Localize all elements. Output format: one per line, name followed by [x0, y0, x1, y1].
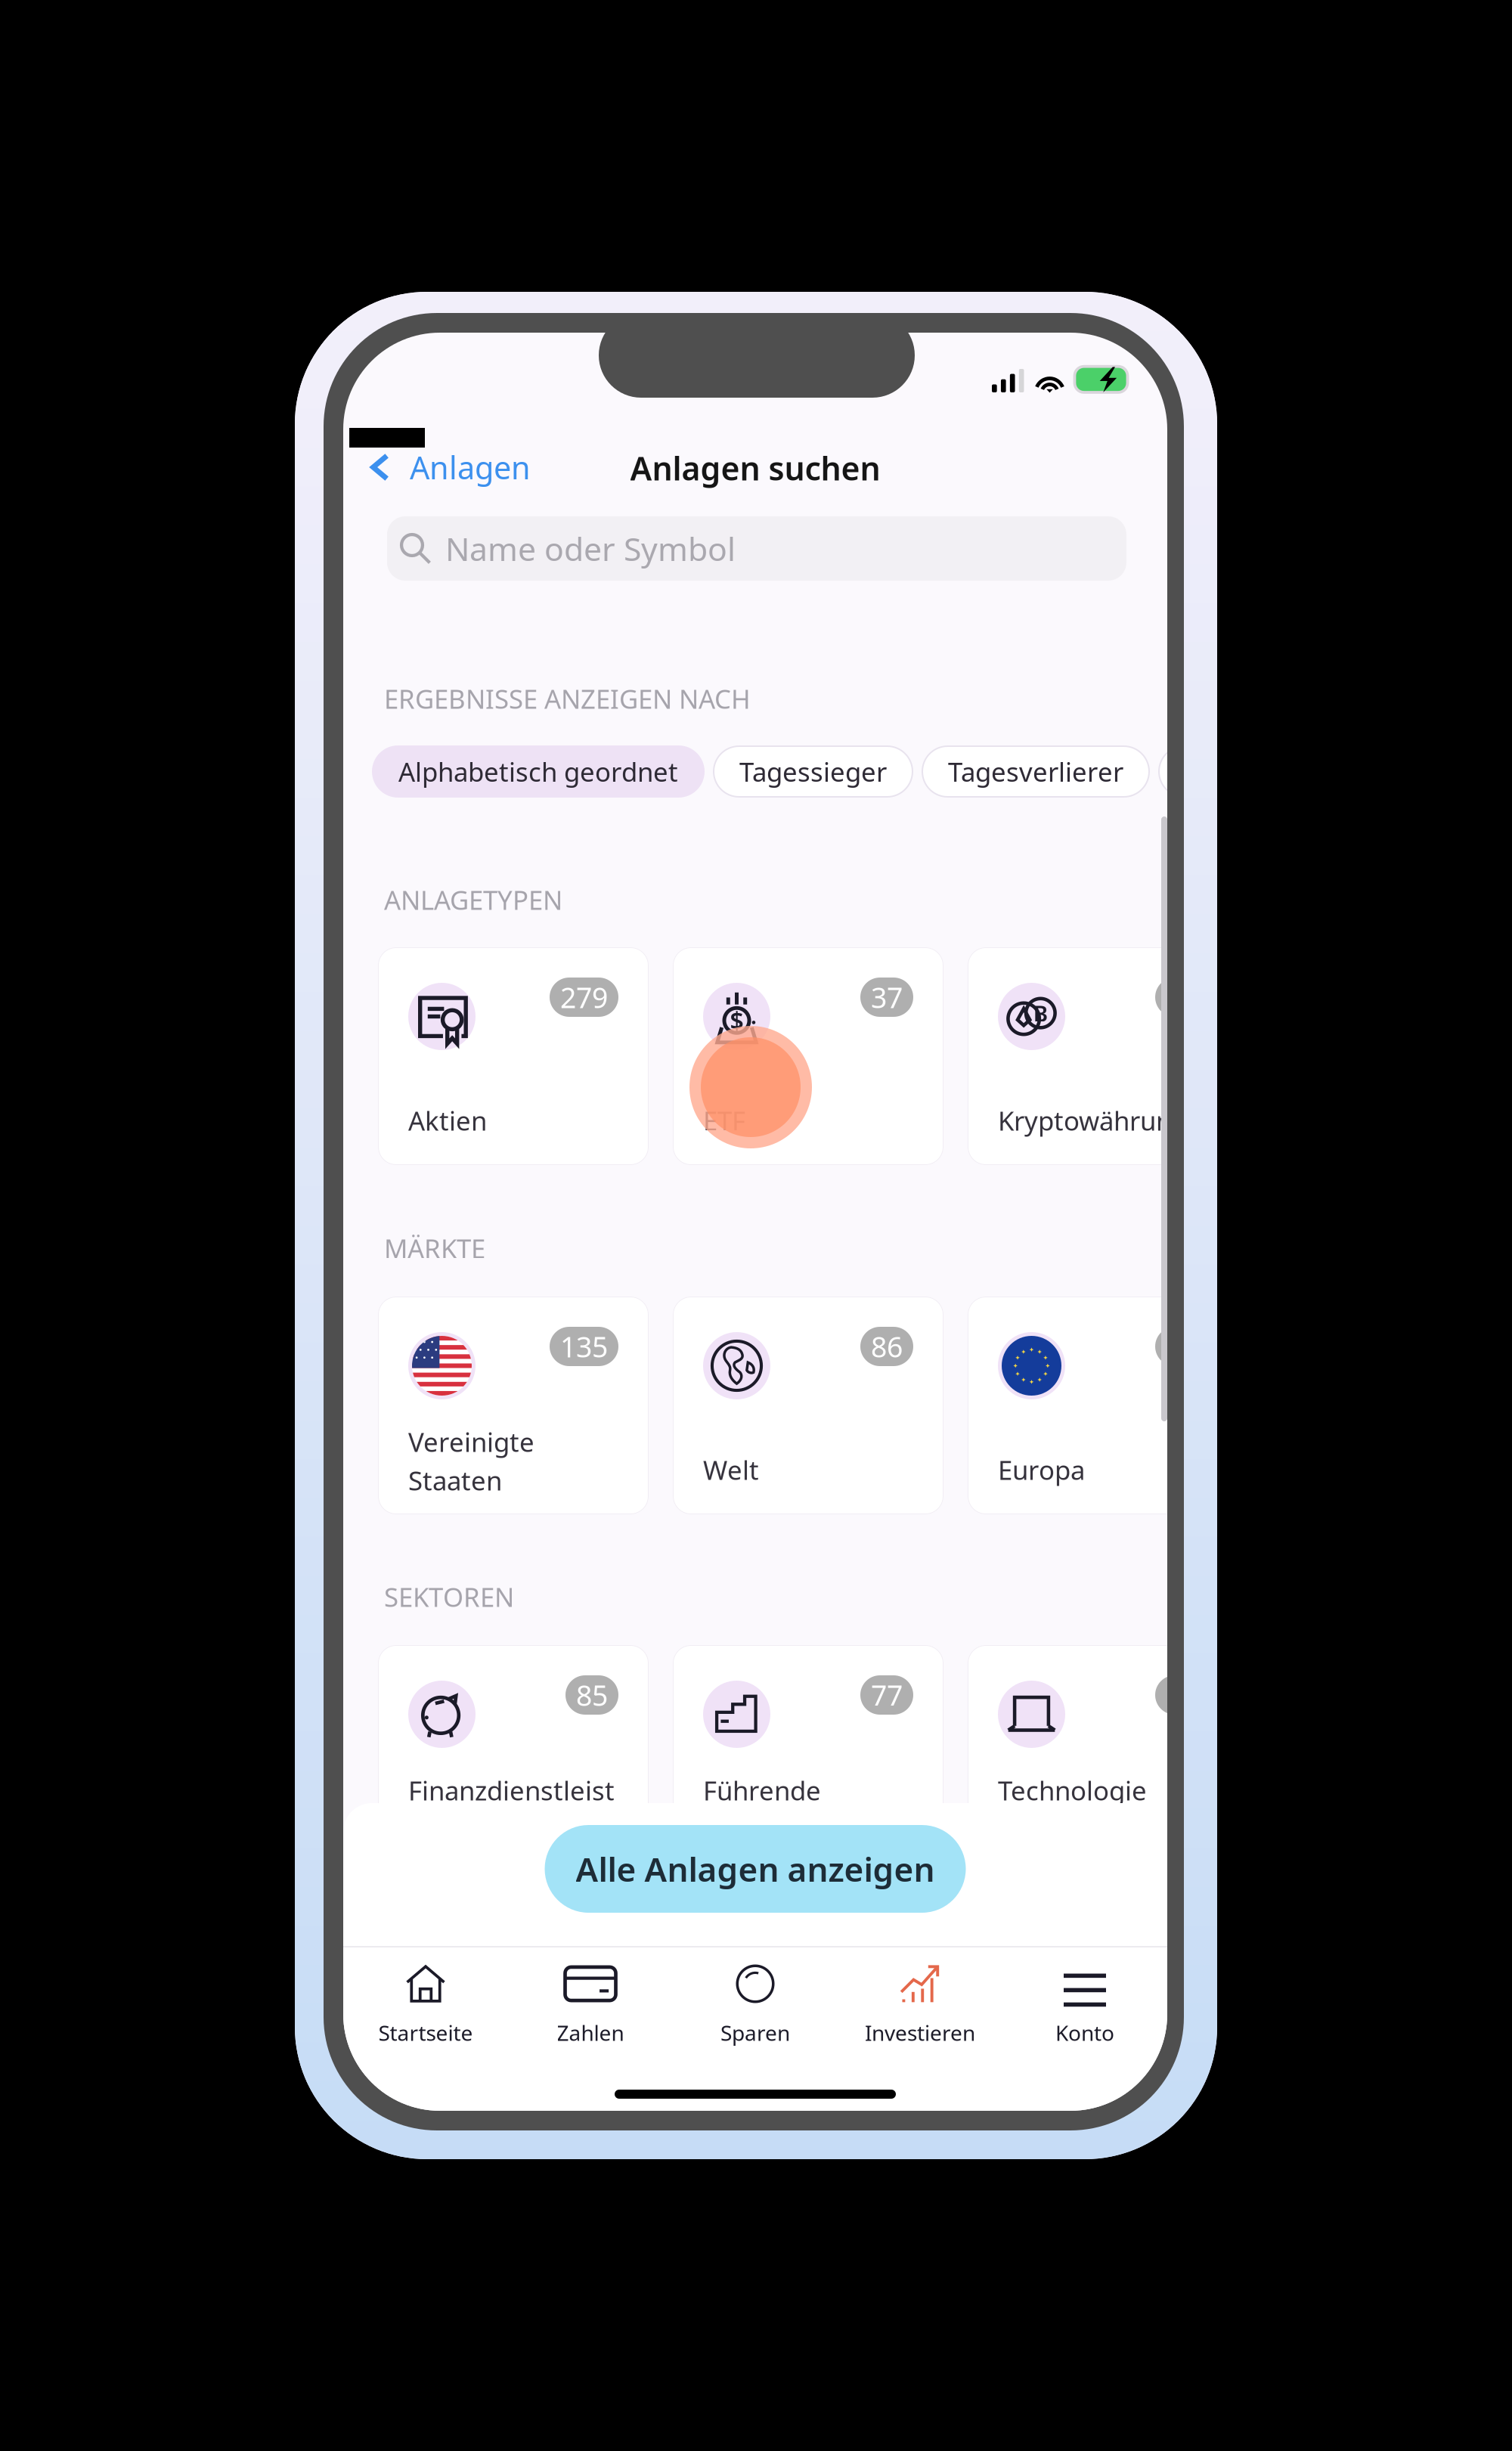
staticText: Anlagen suchen	[630, 447, 880, 489]
staticText: SEKTOREN	[384, 1579, 514, 1614]
button[interactable]: Sparen	[673, 1957, 838, 2062]
button[interactable]: Alle Anlagen anzeigen	[545, 1825, 966, 1913]
staticText: B	[1033, 998, 1048, 1028]
staticText: Kryptowährungen	[998, 1103, 1219, 1138]
staticText: Konto	[1055, 2019, 1114, 2047]
staticText: 85	[576, 1676, 608, 1714]
button[interactable]: 86	[673, 1297, 943, 1514]
staticText: Technologie	[998, 1773, 1147, 1808]
staticText: 37	[871, 978, 903, 1016]
staticText: 279	[560, 978, 608, 1016]
button[interactable]: 50	[968, 1297, 1238, 1514]
staticText: Europa	[998, 1452, 1085, 1487]
button[interactable]: Alphabetisch geordnet	[373, 746, 704, 797]
staticText: Zahlen	[557, 2019, 624, 2047]
staticText: 77	[871, 1676, 903, 1714]
staticText: Startseite	[378, 2019, 473, 2047]
button[interactable]: Investieren	[838, 1957, 1002, 2062]
button[interactable]: Neu	[1159, 746, 1261, 797]
staticText: 86	[871, 1328, 903, 1365]
staticText: ETF	[703, 1103, 745, 1138]
staticText: Tagessieger	[739, 754, 887, 789]
button[interactable]: Anlagen	[343, 441, 544, 494]
button[interactable]: 77	[673, 1645, 943, 1863]
staticText: Staaten	[408, 1463, 502, 1498]
staticText: Anlagen	[410, 447, 531, 488]
button[interactable]: Startseite	[343, 1957, 508, 2062]
staticText: Tagesverlierer	[948, 754, 1123, 789]
staticText: Führende	[703, 1773, 821, 1808]
button[interactable]: 64	[968, 1645, 1238, 1863]
staticText: 135	[560, 1328, 608, 1365]
staticText: Welt	[703, 1452, 759, 1487]
staticText: 50	[1166, 1328, 1198, 1365]
staticText: Alphabetisch geordnet	[398, 754, 678, 789]
staticText: Industrie	[703, 1811, 815, 1846]
button[interactable]: $	[673, 947, 943, 1165]
button[interactable]: Tagesverlierer	[922, 746, 1149, 797]
staticText: MÄRKTE	[384, 1231, 485, 1266]
button[interactable]: 135	[378, 1297, 649, 1514]
staticText: Vereinigte	[408, 1424, 534, 1459]
staticText: 64	[1166, 1676, 1198, 1714]
staticText: ANLAGETYPEN	[384, 882, 562, 917]
button[interactable]: Tagessieger	[714, 746, 912, 797]
button[interactable]: 85	[378, 1645, 649, 1863]
staticText: Finanzdienstleist	[408, 1773, 615, 1808]
button[interactable]: B	[968, 947, 1238, 1165]
button[interactable]: Konto	[1002, 1957, 1167, 2062]
staticText: $	[730, 1004, 744, 1036]
staticText: Neu	[1185, 754, 1235, 789]
button[interactable]: 279	[378, 947, 649, 1165]
staticText: Alle Anlagen anzeigen	[576, 1847, 935, 1891]
staticText: ERGEBNISSE ANZEIGEN NACH	[384, 681, 751, 716]
button[interactable]: Zahlen	[508, 1957, 673, 2062]
staticText: Aktien	[408, 1103, 487, 1138]
staticText: Sparen	[720, 2019, 790, 2047]
staticText: Investieren	[865, 2019, 975, 2047]
staticText: Name oder Symbol	[445, 527, 736, 570]
staticText: 22	[1166, 978, 1198, 1016]
